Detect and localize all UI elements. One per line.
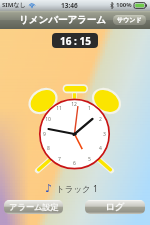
staticText: 3 [103, 131, 106, 138]
staticText: 100% [116, 1, 132, 9]
staticText: ♪ [45, 182, 53, 195]
staticText: 11 [56, 105, 62, 112]
staticText: ログ [105, 201, 125, 213]
staticText: SIMなし [2, 1, 26, 9]
staticText: 1 [88, 105, 91, 112]
staticText: ログ [105, 201, 125, 213]
button[interactable]: アラーム設定 [4, 200, 63, 214]
staticText: 9 [43, 131, 46, 138]
staticText: リメンバーアラーム [19, 14, 107, 26]
staticText: 5 [88, 156, 91, 163]
staticText: 10 [45, 116, 51, 123]
staticText: トラック 1 [56, 183, 98, 195]
staticText: 4 [99, 145, 102, 152]
staticText: 8 [47, 145, 50, 152]
staticText: 13:46 [61, 1, 78, 10]
button[interactable]: ログ [85, 200, 145, 214]
staticText: 7 [58, 156, 61, 163]
staticText: 16 : 15 [60, 34, 91, 48]
staticText: アラーム設定 [9, 202, 59, 212]
staticText: 2 [99, 116, 102, 123]
button[interactable]: サウンド [113, 15, 146, 25]
staticText: サウンド [117, 16, 142, 24]
staticText: 6 [73, 160, 76, 167]
staticText: アラーム設定 [9, 202, 59, 212]
staticText: 12 [71, 101, 77, 108]
